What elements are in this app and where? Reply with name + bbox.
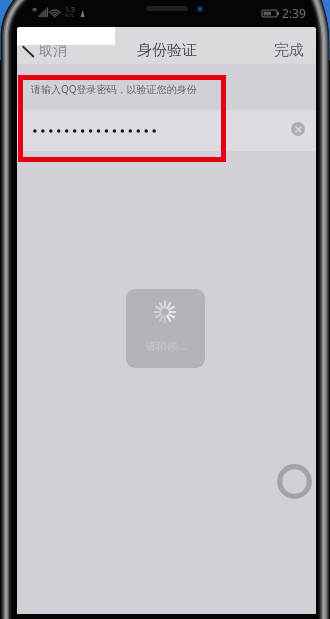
button[interactable]: Assistive touch xyxy=(276,463,313,500)
button[interactable]: 取消 xyxy=(19,42,67,60)
staticText: 2:39 xyxy=(282,5,306,21)
staticText: 请输入QQ登录密码，以验证您的身份 xyxy=(31,82,197,96)
staticText: 请稍候... xyxy=(145,338,187,353)
staticText: 1.3 xyxy=(65,5,75,15)
staticText: K/s xyxy=(65,11,74,19)
staticText: 身份验证 xyxy=(137,41,197,60)
button[interactable]: 完成 xyxy=(270,38,308,63)
button[interactable]: Clear password xyxy=(291,122,305,136)
staticText: 完成 xyxy=(274,41,304,60)
staticText: 取消 xyxy=(39,42,67,60)
